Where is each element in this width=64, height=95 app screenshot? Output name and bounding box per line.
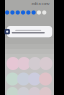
button[interactable]: Contact: [37, 10, 41, 15]
staticText: edit a conv: [31, 1, 49, 6]
button[interactable]: Contact: [21, 10, 25, 15]
button[interactable]: Contact: [42, 10, 46, 15]
button[interactable]: Contact: [10, 10, 15, 15]
button[interactable]: Contact: [16, 10, 20, 15]
button[interactable]: Contact: [32, 10, 36, 15]
button[interactable]: [7, 26, 52, 37]
button[interactable]: Contact: [26, 10, 30, 15]
button[interactable]: Contact: [5, 10, 9, 15]
